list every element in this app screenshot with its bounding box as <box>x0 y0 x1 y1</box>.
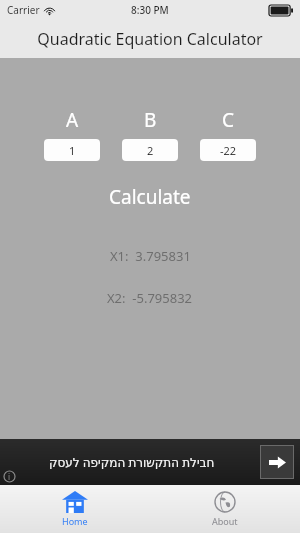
staticText: C <box>222 107 235 133</box>
staticText: 8:30 PM <box>131 3 169 17</box>
button[interactable]: Calculate <box>0 184 300 210</box>
button[interactable]: About <box>150 485 300 533</box>
button[interactable]: 1 <box>44 139 100 161</box>
staticText: Carrier <box>7 3 40 17</box>
staticText: Calculate <box>109 184 191 210</box>
staticText: -22 <box>220 143 237 158</box>
staticText: B <box>144 107 157 133</box>
staticText: A <box>66 107 79 133</box>
staticText: חבילת התקשורת המקיפה לעסק <box>49 454 215 470</box>
staticText: 2 <box>147 143 154 158</box>
button[interactable]: Ad information <box>3 470 16 483</box>
button[interactable]: -22 <box>200 139 256 161</box>
staticText: About <box>212 515 238 527</box>
button[interactable]: חבילת התקשורת המקיפה לעסק <box>0 439 300 485</box>
staticText: Quadratic Equation Calculator <box>37 28 263 50</box>
staticText: 1 <box>69 143 76 158</box>
button[interactable]: Home <box>0 485 150 533</box>
button[interactable]: 2 <box>122 139 178 161</box>
staticText: Home <box>62 515 88 527</box>
staticText: X1: 3.795831 <box>110 247 191 265</box>
staticText: X2: -5.795832 <box>107 289 193 307</box>
button[interactable]: Open advertisement <box>260 445 294 479</box>
staticText: i <box>8 471 11 482</box>
